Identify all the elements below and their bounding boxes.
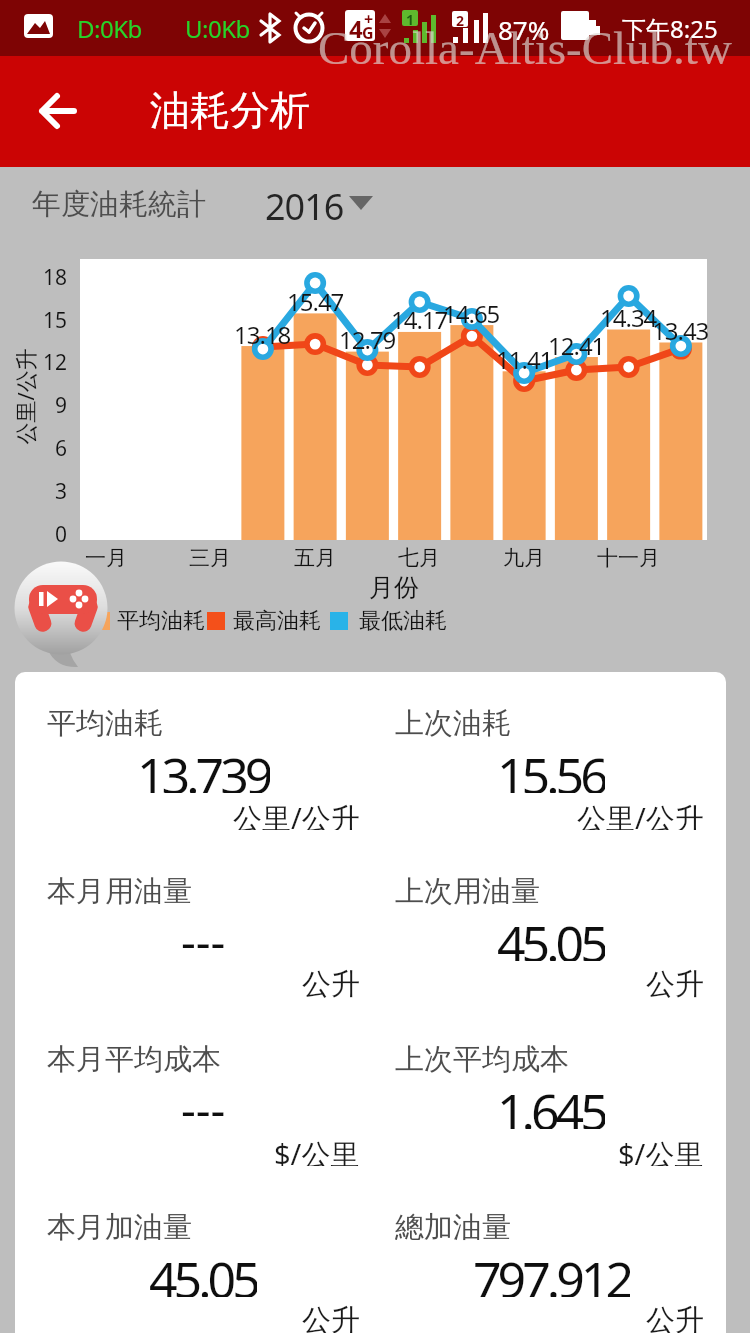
- staticText: Corolla-Altis-Club.tw: [318, 22, 732, 72]
- staticText: 平均油耗: [47, 705, 163, 739]
- staticText: 上次平均成本: [395, 1041, 569, 1075]
- staticText: 本月平均成本: [47, 1041, 221, 1075]
- staticText: 上次用油量: [395, 873, 540, 907]
- staticText: 6: [55, 434, 68, 463]
- staticText: 1: [406, 10, 415, 26]
- staticText: 年度油耗統計: [32, 186, 206, 220]
- staticText: 上次油耗: [395, 705, 511, 739]
- staticText: 最高油耗: [233, 607, 321, 635]
- staticText: U:0Kb: [185, 12, 250, 42]
- staticText: 1.645: [497, 1077, 605, 1129]
- staticText: 14.34: [600, 301, 657, 327]
- staticText: 五月: [294, 545, 336, 571]
- staticText: 下午8:25: [622, 12, 718, 44]
- staticText: 4: [349, 12, 363, 40]
- staticText: 12: [43, 348, 68, 377]
- staticText: 2: [456, 11, 465, 27]
- staticText: 平均油耗: [117, 607, 205, 635]
- staticText: 12.41: [548, 329, 605, 355]
- staticText: ---: [181, 909, 226, 961]
- staticText: 15: [43, 306, 68, 335]
- staticText: 2016: [265, 182, 344, 222]
- staticText: 3: [55, 477, 68, 506]
- staticText: 本月用油量: [47, 873, 192, 907]
- staticText: 9: [55, 391, 68, 420]
- staticText: G: [362, 22, 374, 40]
- staticText: 本月加油量: [47, 1209, 192, 1243]
- staticText: ---: [181, 1077, 226, 1129]
- staticText: 總加油量: [395, 1209, 511, 1243]
- staticText: 45.05: [497, 909, 605, 961]
- staticText: $/公里: [274, 1134, 360, 1166]
- staticText: 797.912: [473, 1245, 630, 1297]
- staticText: 15.47: [287, 285, 344, 311]
- staticText: +: [364, 8, 374, 24]
- staticText: 14.65: [443, 297, 500, 323]
- staticText: 公升: [646, 966, 704, 998]
- staticText: $/公里: [618, 1134, 704, 1166]
- button[interactable]: [258, 178, 378, 224]
- staticText: 0: [55, 520, 68, 549]
- staticText: 15.56: [497, 741, 605, 793]
- button[interactable]: [15, 672, 726, 1333]
- staticText: 七月: [398, 545, 440, 571]
- staticText: 公升: [646, 1302, 704, 1333]
- staticText: 十一月: [597, 545, 660, 571]
- button[interactable]: [25, 85, 95, 140]
- staticText: 九月: [503, 545, 545, 571]
- button[interactable]: [15, 562, 108, 668]
- staticText: 公里/公升: [9, 347, 39, 444]
- staticText: 最低油耗: [359, 607, 447, 635]
- staticText: 一月: [85, 545, 127, 571]
- staticText: 油耗分析: [150, 85, 310, 135]
- staticText: 13.18: [234, 318, 291, 344]
- staticText: 12.79: [339, 323, 396, 349]
- staticText: 18: [43, 263, 68, 292]
- staticText: 11.41: [496, 343, 553, 369]
- staticText: 月份: [369, 572, 419, 600]
- staticText: 公升: [302, 966, 360, 998]
- staticText: 公升: [302, 1302, 360, 1333]
- staticText: 45.05: [149, 1245, 257, 1297]
- staticText: 87%: [498, 12, 550, 42]
- staticText: 13.739: [137, 741, 270, 793]
- staticText: D:0Kb: [77, 12, 142, 42]
- staticText: 公里/公升: [233, 798, 360, 830]
- staticText: 14.17: [391, 303, 448, 329]
- staticText: 公里/公升: [577, 798, 704, 830]
- staticText: 13.43: [652, 314, 709, 340]
- staticText: 三月: [189, 545, 231, 571]
